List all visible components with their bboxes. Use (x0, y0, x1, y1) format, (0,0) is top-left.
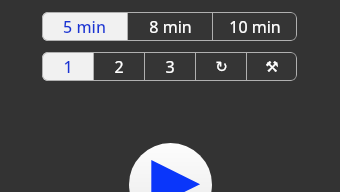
staticText: 2 (114, 56, 124, 78)
button[interactable]: Tools (247, 52, 297, 81)
button[interactable]: 10 min (213, 12, 297, 41)
button[interactable]: 3 (145, 52, 195, 81)
staticText: 3 (165, 56, 175, 78)
staticText: 1 (63, 56, 73, 78)
staticText: 8 min (149, 16, 192, 38)
button[interactable]: Play (129, 143, 212, 192)
button[interactable]: Repeat (196, 52, 246, 81)
staticText: ⚒ (265, 58, 279, 75)
staticText: ↻ (215, 58, 228, 75)
staticText: 10 min (229, 16, 281, 38)
button[interactable]: 5 min (42, 12, 127, 41)
button[interactable]: 1 (42, 52, 93, 81)
button[interactable]: 8 min (128, 12, 212, 41)
button[interactable]: 2 (94, 52, 144, 81)
staticText: 5 min (63, 16, 106, 38)
